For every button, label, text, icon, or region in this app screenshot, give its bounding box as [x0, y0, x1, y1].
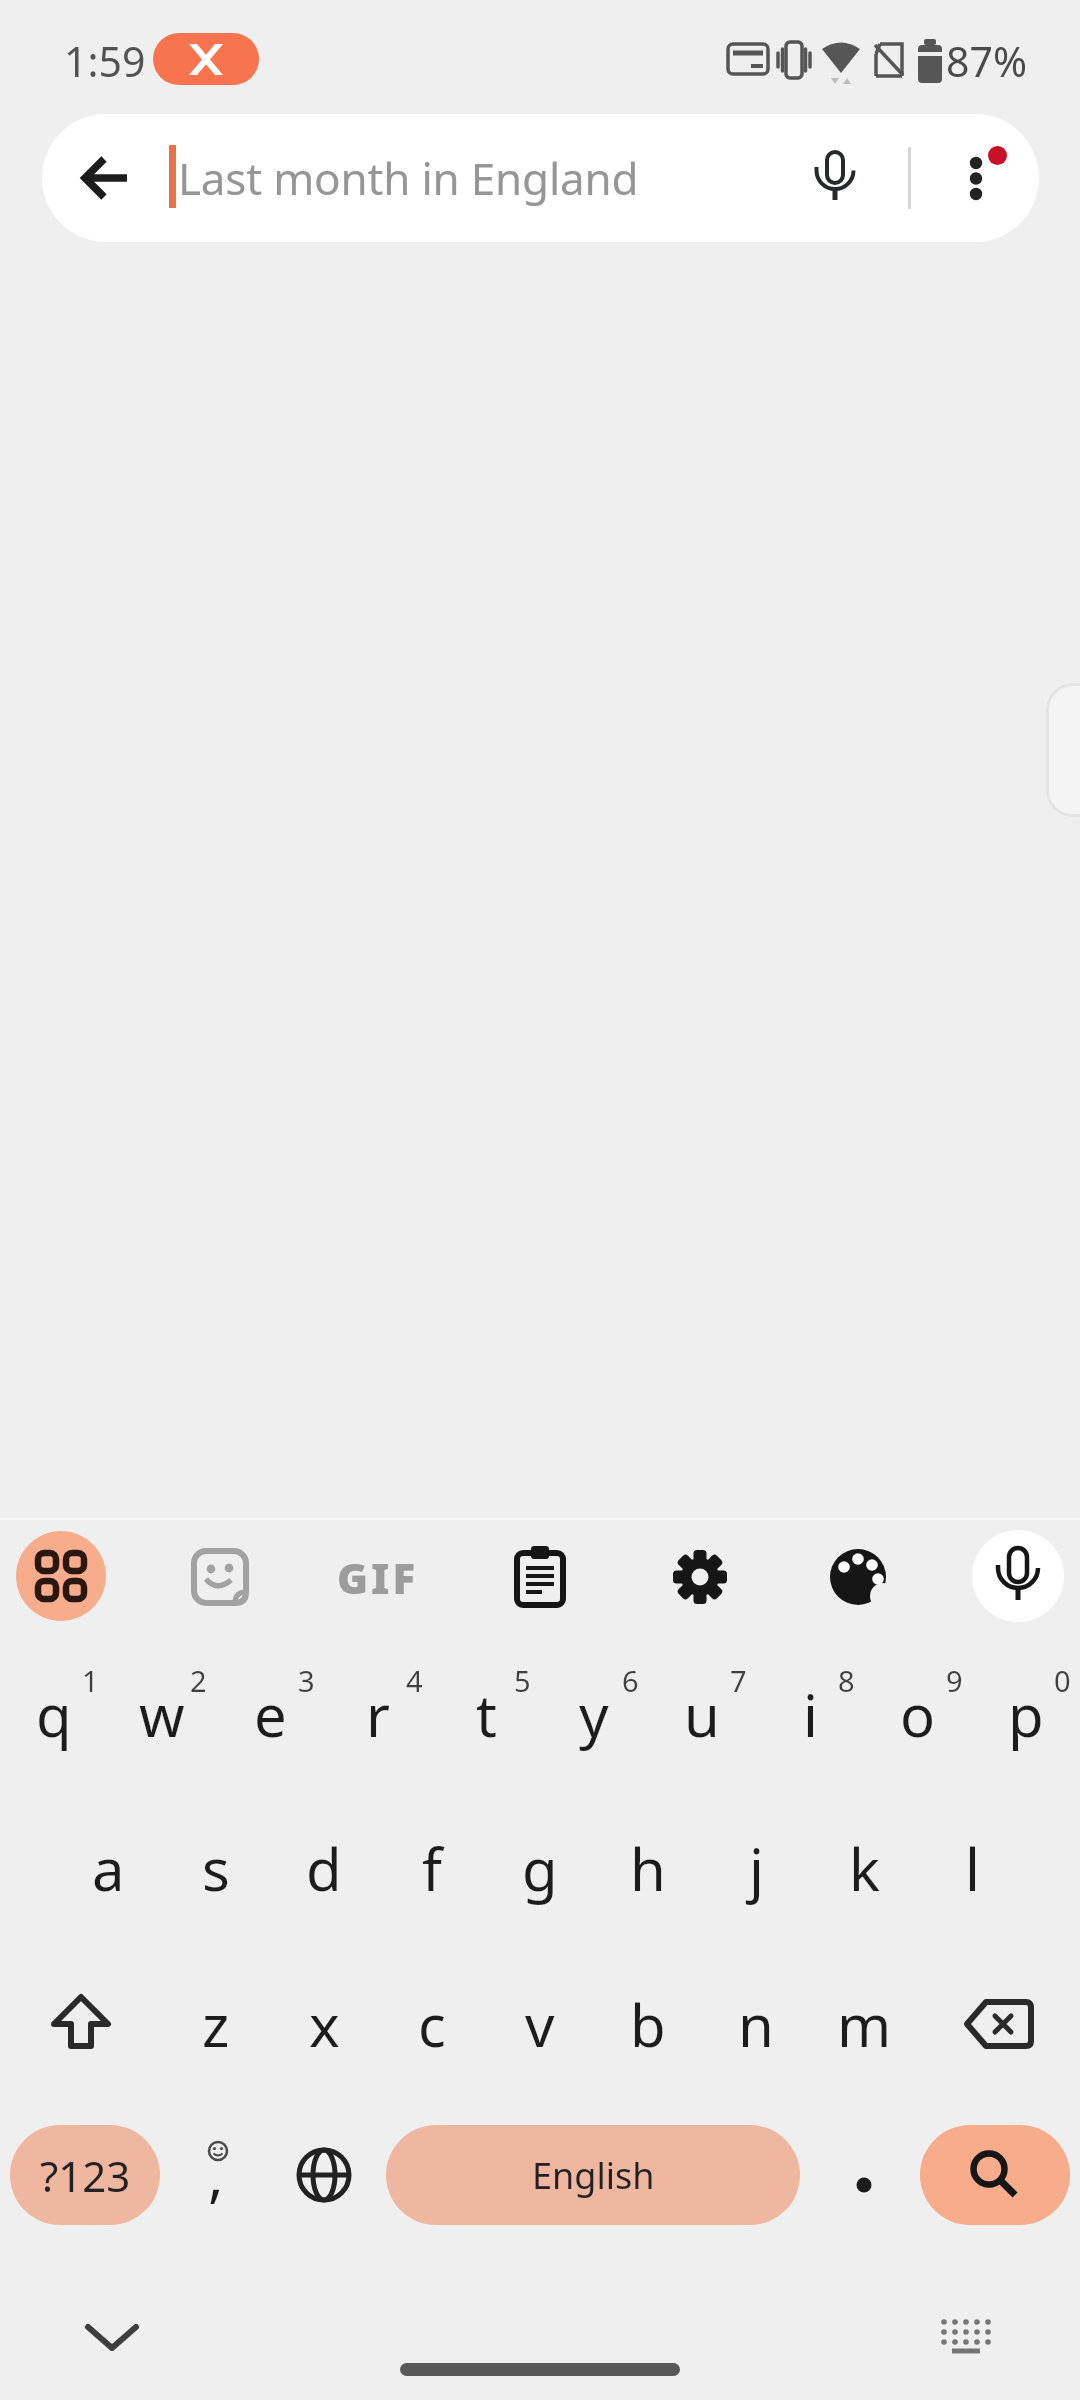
staticText: Last month in England — [178, 148, 639, 208]
staticText: 3 — [298, 1661, 315, 1700]
button[interactable]: g — [486, 1790, 594, 1946]
button[interactable] — [655, 1532, 745, 1622]
button[interactable]: f — [378, 1790, 486, 1946]
staticText: s — [202, 1829, 230, 1908]
staticText: q — [36, 1675, 72, 1754]
button[interactable]: u — [648, 1636, 756, 1792]
button[interactable]: c — [378, 1946, 486, 2102]
staticText: y — [579, 1675, 609, 1754]
staticText: k — [849, 1829, 880, 1908]
button[interactable]: x — [270, 1946, 378, 2102]
button[interactable]: l — [918, 1790, 1026, 1946]
button[interactable]: k — [810, 1790, 918, 1946]
staticText: d — [306, 1829, 342, 1908]
button[interactable]: b — [594, 1946, 702, 2102]
staticText: l — [965, 1829, 980, 1908]
button[interactable]: o — [864, 1636, 972, 1792]
staticText: w — [139, 1675, 185, 1754]
button[interactable]: e — [216, 1636, 324, 1792]
staticText: t — [476, 1675, 497, 1754]
button[interactable] — [791, 134, 879, 222]
staticText: r — [366, 1675, 390, 1754]
staticText: b — [630, 1985, 666, 2064]
staticText: f — [422, 1829, 442, 1908]
button[interactable] — [918, 1946, 1080, 2102]
staticText: c — [418, 1985, 446, 2064]
button[interactable]: h — [594, 1790, 702, 1946]
button[interactable]: m — [810, 1946, 918, 2102]
staticText: o — [900, 1675, 936, 1754]
button[interactable] — [62, 134, 150, 222]
button[interactable] — [814, 1532, 904, 1622]
staticText: u — [684, 1675, 720, 1754]
button[interactable] — [0, 1946, 162, 2102]
staticText: e — [254, 1675, 287, 1754]
button[interactable] — [495, 1532, 585, 1622]
button[interactable]: j — [702, 1790, 810, 1946]
button[interactable]: q — [0, 1636, 108, 1792]
button[interactable] — [810, 2105, 918, 2261]
button[interactable]: n — [702, 1946, 810, 2102]
staticText: 9 — [946, 1661, 963, 1700]
button[interactable]: p — [972, 1636, 1080, 1792]
button[interactable]: v — [486, 1946, 594, 2102]
button[interactable]: a — [54, 1790, 162, 1946]
button[interactable]: s — [162, 1790, 270, 1946]
button[interactable] — [175, 1532, 265, 1622]
staticText: z — [202, 1985, 230, 2064]
button[interactable] — [56, 2295, 168, 2379]
button[interactable] — [920, 2125, 1070, 2225]
button[interactable] — [972, 1530, 1064, 1622]
staticText: j — [749, 1829, 764, 1908]
button[interactable]: y — [540, 1636, 648, 1792]
button[interactable]: z — [162, 1946, 270, 2102]
staticText: g — [522, 1829, 558, 1908]
button[interactable] — [16, 1531, 106, 1621]
staticText: 1 — [82, 1661, 99, 1700]
staticText: x — [309, 1985, 340, 2064]
button[interactable]: r — [324, 1636, 432, 1792]
button[interactable] — [270, 2097, 378, 2253]
button[interactable] — [910, 2295, 1022, 2379]
staticText: 5 — [514, 1661, 531, 1700]
button[interactable] — [928, 134, 1016, 222]
button[interactable]: ?123 — [10, 2125, 160, 2225]
staticText: n — [738, 1985, 774, 2064]
staticText: 0 — [1054, 1661, 1071, 1700]
staticText: a — [92, 1829, 125, 1908]
button[interactable]: d — [270, 1790, 378, 1946]
staticText: 87% — [946, 33, 1027, 87]
staticText: i — [803, 1675, 818, 1754]
staticText: GIF — [337, 1549, 419, 1606]
button[interactable]: t — [432, 1636, 540, 1792]
button[interactable]: GIF — [330, 1532, 426, 1622]
staticText: 7 — [730, 1661, 747, 1700]
button[interactable]: English — [386, 2125, 800, 2225]
staticText: ?123 — [40, 2147, 131, 2204]
staticText: m — [837, 1985, 892, 2064]
staticText: 4 — [406, 1661, 423, 1700]
staticText: English — [532, 2151, 655, 2200]
staticText: p — [1008, 1675, 1044, 1754]
button[interactable]: i — [756, 1636, 864, 1792]
staticText: 2 — [190, 1661, 207, 1700]
button[interactable] — [162, 2105, 270, 2261]
staticText: , — [208, 2134, 224, 2213]
staticText: h — [630, 1829, 666, 1908]
staticText: 8 — [838, 1661, 855, 1700]
staticText: 6 — [622, 1661, 639, 1700]
staticText: v — [525, 1985, 555, 2064]
staticText: 1:59 — [64, 33, 146, 87]
button[interactable]: w — [108, 1636, 216, 1792]
